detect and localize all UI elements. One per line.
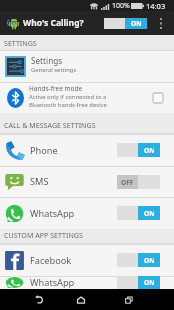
button[interactable]: On xyxy=(117,253,160,267)
staticText: ON xyxy=(144,146,155,155)
button[interactable]: Off xyxy=(117,175,160,189)
button[interactable]: Facebook xyxy=(0,244,174,276)
button[interactable]: More options xyxy=(154,11,168,35)
staticText: Who's Calling? xyxy=(23,17,84,29)
staticText: WhatsApp xyxy=(30,276,75,289)
staticText: CUSTOM APP SETTINGS xyxy=(4,230,83,240)
button[interactable]: On xyxy=(104,18,147,29)
button[interactable]: On xyxy=(117,143,160,157)
staticText: OFF xyxy=(121,178,134,187)
staticText: SMS xyxy=(30,175,49,188)
staticText: ON xyxy=(144,256,155,265)
staticText: Phone xyxy=(30,144,58,157)
button[interactable]: Hands-free mode checkbox xyxy=(153,93,163,103)
staticText: ON xyxy=(131,19,142,28)
staticText: 100% xyxy=(112,1,130,11)
button[interactable]: WhatsApp xyxy=(0,276,174,289)
button[interactable]: Phone xyxy=(0,134,174,166)
staticText: ON xyxy=(144,278,155,287)
staticText: General settings xyxy=(31,66,77,74)
button[interactable]: Home xyxy=(57,289,105,310)
staticText: Settings xyxy=(31,55,63,66)
button[interactable]: SMS xyxy=(0,166,174,197)
staticText: 14:03 xyxy=(146,1,166,11)
button[interactable]: Back xyxy=(20,289,57,310)
staticText: ON xyxy=(144,209,155,218)
staticText: Hands-free mode xyxy=(29,84,83,93)
staticText: SETTINGS xyxy=(4,38,37,48)
staticText: Facebook xyxy=(30,254,72,267)
button[interactable]: Hands-free mode xyxy=(0,82,174,113)
staticText: CALL & MESSAGE SETTINGS xyxy=(4,120,96,130)
button[interactable]: Recents xyxy=(105,289,153,310)
button[interactable]: Settings xyxy=(0,51,174,82)
button[interactable]: On xyxy=(117,276,160,289)
staticText: WhatsApp xyxy=(30,207,75,220)
button[interactable]: WhatsApp xyxy=(0,197,174,229)
button[interactable]: On xyxy=(117,206,160,220)
staticText: Active only if connected to a Bluetooth … xyxy=(29,93,107,109)
